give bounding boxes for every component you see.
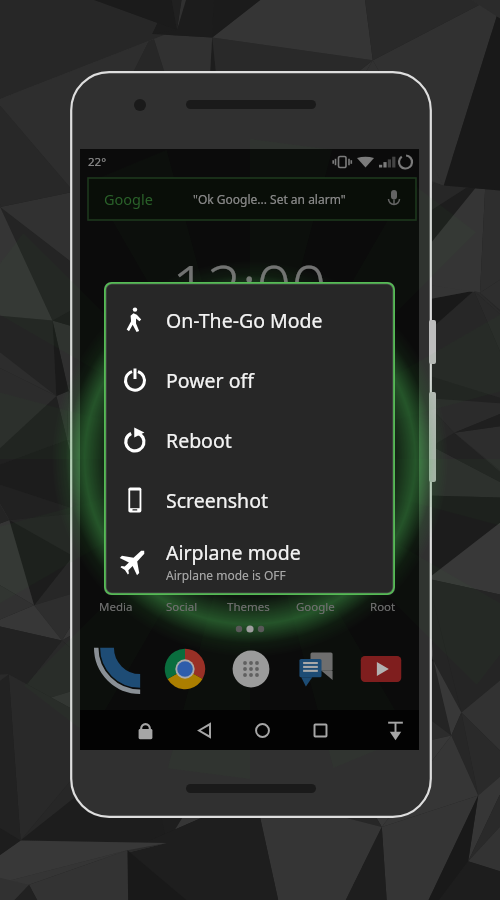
- staticText: Social: [166, 599, 198, 615]
- button[interactable]: Phone: [86, 644, 152, 694]
- staticText: Google: [104, 189, 153, 209]
- staticText: "Ok Google... Set an alarm": [193, 191, 346, 207]
- button[interactable]: Airplane mode: [104, 530, 395, 590]
- button[interactable]: YouTube: [348, 644, 413, 694]
- staticText: Media: [99, 599, 133, 615]
- button[interactable]: Themes: [215, 599, 282, 615]
- button[interactable]: Root: [349, 599, 416, 615]
- staticText: Screenshot: [166, 487, 269, 514]
- button[interactable]: Voice search: [381, 186, 407, 212]
- staticText: On-The-Go Mode: [166, 307, 323, 334]
- staticText: Themes: [227, 599, 270, 615]
- staticText: Airplane mode is OFF: [166, 567, 286, 583]
- button[interactable]: Screenshot: [104, 470, 395, 530]
- button[interactable]: Lock: [116, 710, 175, 750]
- staticText: Airplane mode: [166, 539, 301, 566]
- button[interactable]: Power off: [104, 350, 395, 410]
- button[interactable]: All apps: [218, 644, 283, 694]
- button[interactable]: Social: [149, 599, 215, 615]
- button[interactable]: Reboot: [104, 410, 395, 470]
- staticText: 12:00: [172, 244, 327, 327]
- staticText: Google: [296, 599, 335, 615]
- button[interactable]: Hide navigation bar: [371, 710, 419, 750]
- button[interactable]: Google: [88, 178, 416, 220]
- button[interactable]: Recents: [291, 710, 349, 750]
- staticText: Reboot: [166, 427, 232, 454]
- button[interactable]: Back: [175, 710, 233, 750]
- staticText: Power off: [166, 367, 254, 394]
- button[interactable]: Media: [83, 599, 149, 615]
- staticText: 22°: [88, 154, 107, 170]
- button[interactable]: Messages: [283, 644, 348, 694]
- button[interactable]: On-The-Go Mode: [104, 290, 395, 350]
- button[interactable]: Home: [233, 710, 291, 750]
- staticText: Root: [370, 599, 396, 615]
- button[interactable]: Google: [282, 599, 349, 615]
- button[interactable]: Chrome: [152, 644, 218, 694]
